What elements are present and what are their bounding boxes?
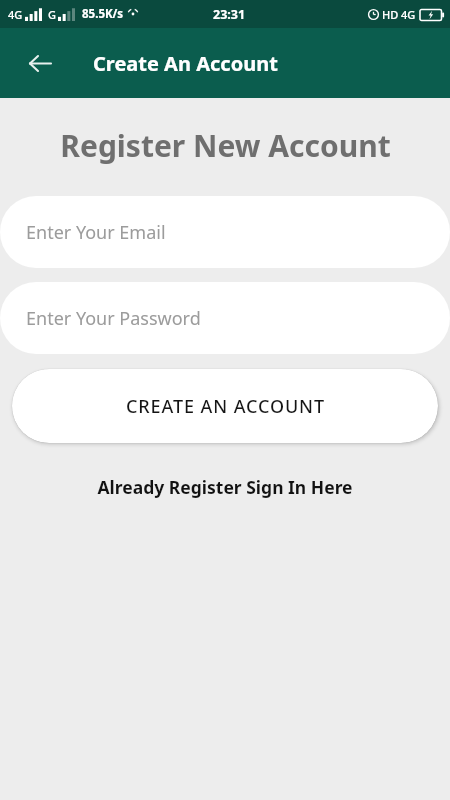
button[interactable]: Already Register Sign In Here [0,475,450,499]
staticText: Already Register Sign In Here [97,475,353,499]
staticText: 85.5K/s [82,6,124,22]
staticText: 4G [8,7,23,22]
staticText: HD [382,7,399,22]
staticText: 23:31 [213,6,246,23]
button[interactable]: Enter Your Password [0,282,450,354]
button[interactable]: CREATE AN ACCOUNT [12,369,438,443]
staticText: 4G [401,7,416,22]
staticText: Enter Your Email [26,220,166,245]
staticText: G [48,7,56,22]
staticText: Enter Your Password [26,306,201,331]
staticText: Create An Account [93,50,278,77]
staticText: CREATE AN ACCOUNT [126,394,325,419]
staticText: Register New Account [60,125,391,166]
button[interactable]: Back [16,39,64,87]
button[interactable]: Enter Your Email [0,196,450,268]
